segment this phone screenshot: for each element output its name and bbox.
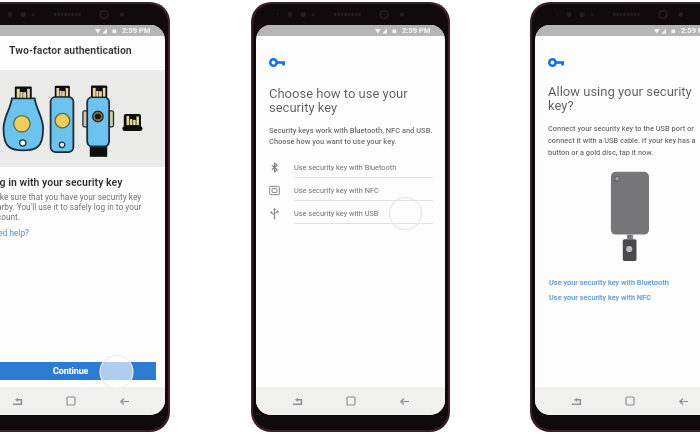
- button[interactable]: Home: [618, 389, 642, 413]
- button[interactable]: Use security key with USB: [256, 203, 445, 226]
- staticText: Allow using your security key?: [548, 84, 700, 113]
- button[interactable]: Home: [339, 389, 363, 413]
- staticText: Use security key with USB: [294, 209, 379, 218]
- button[interactable]: Use security key with NFC: [256, 180, 445, 203]
- button[interactable]: Use your security key with Bluetooth: [549, 278, 669, 287]
- button[interactable]: Continue: [0, 362, 156, 380]
- staticText: Continue: [53, 366, 89, 376]
- staticText: Use security key with Bluetooth: [294, 163, 397, 172]
- button[interactable]: Back: [112, 389, 136, 413]
- button[interactable]: Back: [392, 389, 416, 413]
- button[interactable]: Use your security key with NFC: [549, 293, 651, 302]
- staticText: Log in with your security key: [0, 176, 123, 188]
- button[interactable]: Recents: [564, 389, 588, 413]
- button[interactable]: Recents: [5, 389, 29, 413]
- staticText: 2:59 PM: [402, 26, 431, 35]
- staticText: 2:59 PM: [122, 26, 151, 35]
- button[interactable]: Recents: [285, 389, 309, 413]
- staticText: Two-factor authentication: [9, 44, 132, 56]
- staticText: Security keys work with Bluetooth, NFC a…: [269, 126, 436, 146]
- button[interactable]: Home: [59, 389, 83, 413]
- button[interactable]: Back: [671, 389, 695, 413]
- staticText: 2:59 PM: [681, 26, 700, 35]
- button[interactable]: Use security key with Bluetooth: [256, 157, 445, 180]
- staticText: Connect your security key to the USB por…: [548, 124, 700, 156]
- staticText: Use security key with NFC: [294, 186, 379, 195]
- staticText: Choose how to use your security key: [269, 86, 436, 115]
- button[interactable]: Need help?: [0, 228, 30, 238]
- staticText: Make sure that you have your security ke…: [0, 192, 153, 222]
